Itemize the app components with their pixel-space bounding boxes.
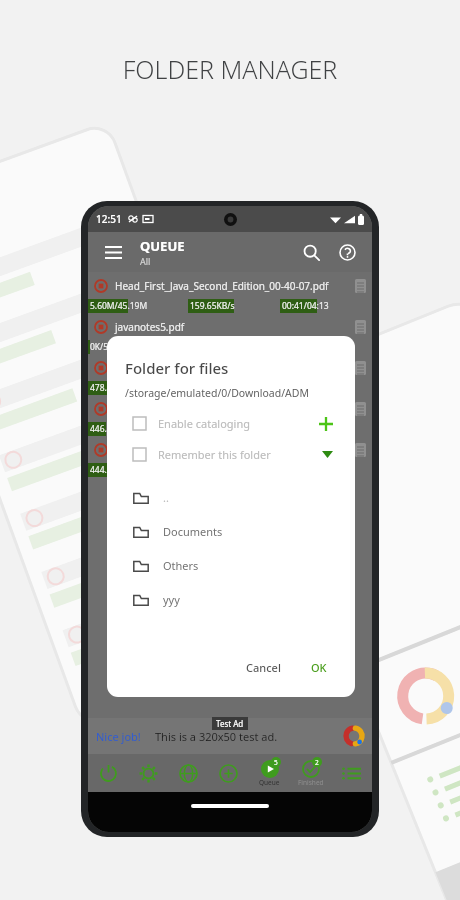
button[interactable]: 2 bbox=[290, 754, 331, 792]
button[interactable]: Head_First_Java_Second_Edition_00-40-07.… bbox=[88, 272, 372, 313]
staticText: yyy bbox=[163, 592, 180, 607]
button[interactable]: Cancel bbox=[236, 654, 291, 681]
button[interactable]: List bbox=[331, 754, 372, 792]
staticText: FOLDER MANAGER bbox=[0, 52, 460, 86]
staticText: :57 bbox=[282, 382, 295, 394]
staticText: This is a 320x50 test ad. bbox=[155, 729, 278, 744]
staticText: Remember this folder bbox=[158, 447, 271, 462]
button[interactable]: OK bbox=[301, 654, 337, 681]
staticText: .. bbox=[163, 490, 169, 505]
staticText: 5.60M/45.19M bbox=[90, 300, 148, 312]
button[interactable]: Adv.pdf bbox=[88, 436, 372, 477]
button[interactable]: Others bbox=[125, 548, 337, 582]
button[interactable]: Nice job! bbox=[96, 718, 364, 754]
button[interactable]: Menu bbox=[98, 237, 128, 267]
staticText: 00:41/04:13 bbox=[282, 300, 329, 312]
staticText: javanotes5.pdf bbox=[115, 320, 185, 334]
staticText: 12:51 bbox=[96, 212, 122, 226]
button[interactable]: Enable cataloging bbox=[125, 416, 337, 431]
staticText: All bbox=[140, 255, 151, 267]
button[interactable]: Search bbox=[296, 237, 326, 267]
staticText: Head_First_Java_Second_Edition_00-40-07.… bbox=[115, 279, 329, 293]
button[interactable]: Remember this folder bbox=[125, 447, 337, 462]
button[interactable]: GitHub_1.pdf bbox=[88, 354, 372, 395]
staticText: Queue bbox=[259, 778, 280, 787]
staticText: GitHub_1.pdf bbox=[115, 361, 177, 375]
button[interactable]: yyy bbox=[125, 582, 337, 616]
staticText: Documents bbox=[163, 524, 223, 539]
staticText: 159.65KB/s bbox=[190, 300, 235, 312]
staticText: Test Ad bbox=[216, 718, 244, 729]
staticText: Nice job! bbox=[96, 729, 141, 744]
button[interactable]: Add bbox=[208, 754, 249, 792]
button[interactable]: Whatsapp.apk bbox=[88, 395, 372, 436]
button[interactable]: 5 bbox=[249, 754, 290, 792]
button[interactable]: Power bbox=[88, 754, 128, 792]
staticText: 478.49K/14.20M bbox=[90, 382, 155, 394]
staticText: OK bbox=[311, 660, 327, 675]
staticText: Adv.pdf bbox=[115, 443, 151, 457]
staticText: 446.45K/90M bbox=[90, 423, 143, 435]
button[interactable]: .. bbox=[125, 480, 337, 514]
button[interactable]: Settings bbox=[128, 754, 168, 792]
staticText: Cancel bbox=[246, 660, 281, 675]
staticText: Folder for files bbox=[125, 358, 229, 378]
button[interactable]: Help bbox=[332, 237, 362, 267]
staticText: 2 bbox=[315, 758, 319, 767]
staticText: 0K/5.01M bbox=[90, 341, 128, 353]
staticText: 5 bbox=[274, 758, 278, 767]
button[interactable]: Browser bbox=[168, 754, 208, 792]
staticText: 444.87K/12M bbox=[90, 464, 143, 476]
staticText: Enable cataloging bbox=[158, 416, 251, 431]
staticText: /storage/emulated/0/Download/ADM bbox=[125, 386, 309, 400]
staticText: Finished bbox=[298, 778, 324, 787]
staticText: Others bbox=[163, 558, 199, 573]
button[interactable]: Documents bbox=[125, 514, 337, 548]
staticText: QUEUE bbox=[140, 237, 185, 255]
button[interactable]: javanotes5.pdf bbox=[88, 313, 372, 354]
